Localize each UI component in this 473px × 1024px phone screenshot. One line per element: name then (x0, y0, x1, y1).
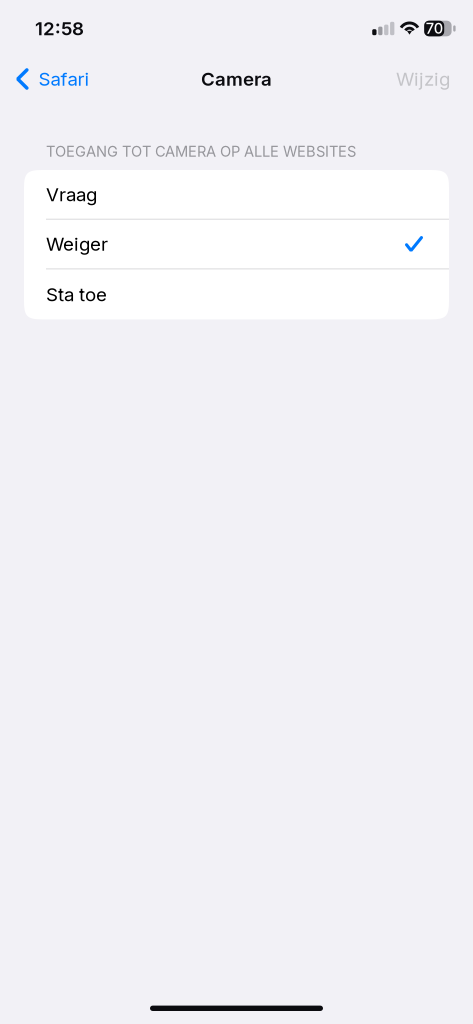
staticText: Camera (201, 68, 272, 90)
button[interactable]: Wijzig (392, 57, 454, 101)
button[interactable]: Weiger (24, 220, 449, 269)
button[interactable]: Safari (12, 57, 94, 101)
staticText: TOEGANG TOT CAMERA OP ALLE WEBSITES (46, 143, 356, 160)
staticText: Wijzig (396, 68, 450, 90)
staticText: Vraag (46, 183, 97, 205)
staticText: Safari (39, 68, 90, 90)
button[interactable]: Sta toe (24, 269, 449, 319)
staticText: Sta toe (46, 283, 107, 305)
staticText: 70 (426, 20, 443, 37)
staticText: Weiger (46, 233, 108, 255)
staticText: 12:58 (35, 17, 84, 39)
button[interactable]: Vraag (24, 170, 449, 220)
